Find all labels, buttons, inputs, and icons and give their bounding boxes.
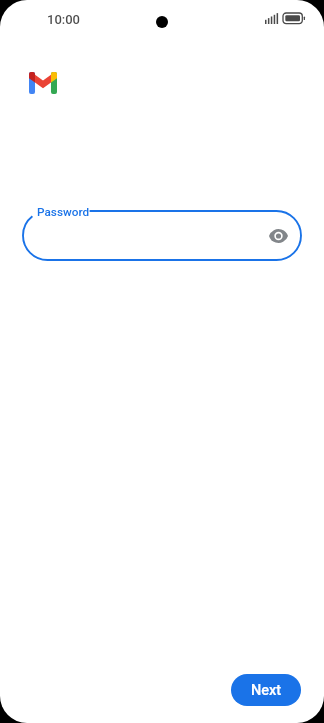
button[interactable]: Show password [23,211,301,260]
staticText: Next [251,682,282,699]
staticText: 10:00 [47,12,80,27]
button[interactable]: Next [231,674,301,706]
staticText: Password [37,205,90,219]
button[interactable]: Show password [266,224,290,248]
